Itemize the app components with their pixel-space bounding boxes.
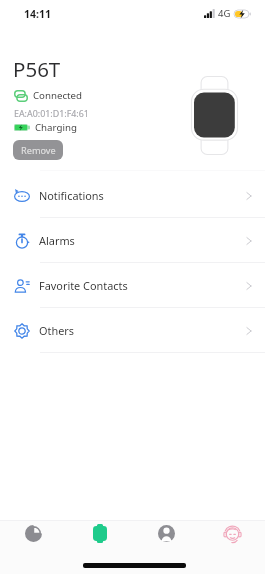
staticText: 4G — [218, 7, 231, 20]
button[interactable]: Notifications — [0, 173, 265, 218]
button[interactable]: Remove — [13, 140, 63, 160]
button[interactable]: Device — [67, 518, 133, 549]
button[interactable]: Dashboard — [0, 518, 67, 549]
button[interactable]: Others — [0, 308, 265, 353]
button[interactable]: Profile — [133, 518, 199, 549]
staticText: Others — [39, 323, 75, 338]
staticText: Charging — [35, 121, 77, 134]
button[interactable]: Favorite Contacts — [0, 263, 265, 308]
staticText: P56T — [13, 55, 61, 83]
button[interactable]: Alarms — [0, 218, 265, 263]
staticText: Alarms — [39, 233, 75, 248]
staticText: Connected — [33, 89, 82, 102]
button[interactable]: Support — [199, 518, 265, 549]
staticText: Remove — [21, 144, 56, 157]
staticText: 14:11 — [24, 7, 51, 21]
staticText: Notifications — [39, 188, 104, 203]
staticText: EA:A0:01:D1:F4:61 — [14, 107, 89, 119]
staticText: Favorite Contacts — [39, 278, 128, 293]
